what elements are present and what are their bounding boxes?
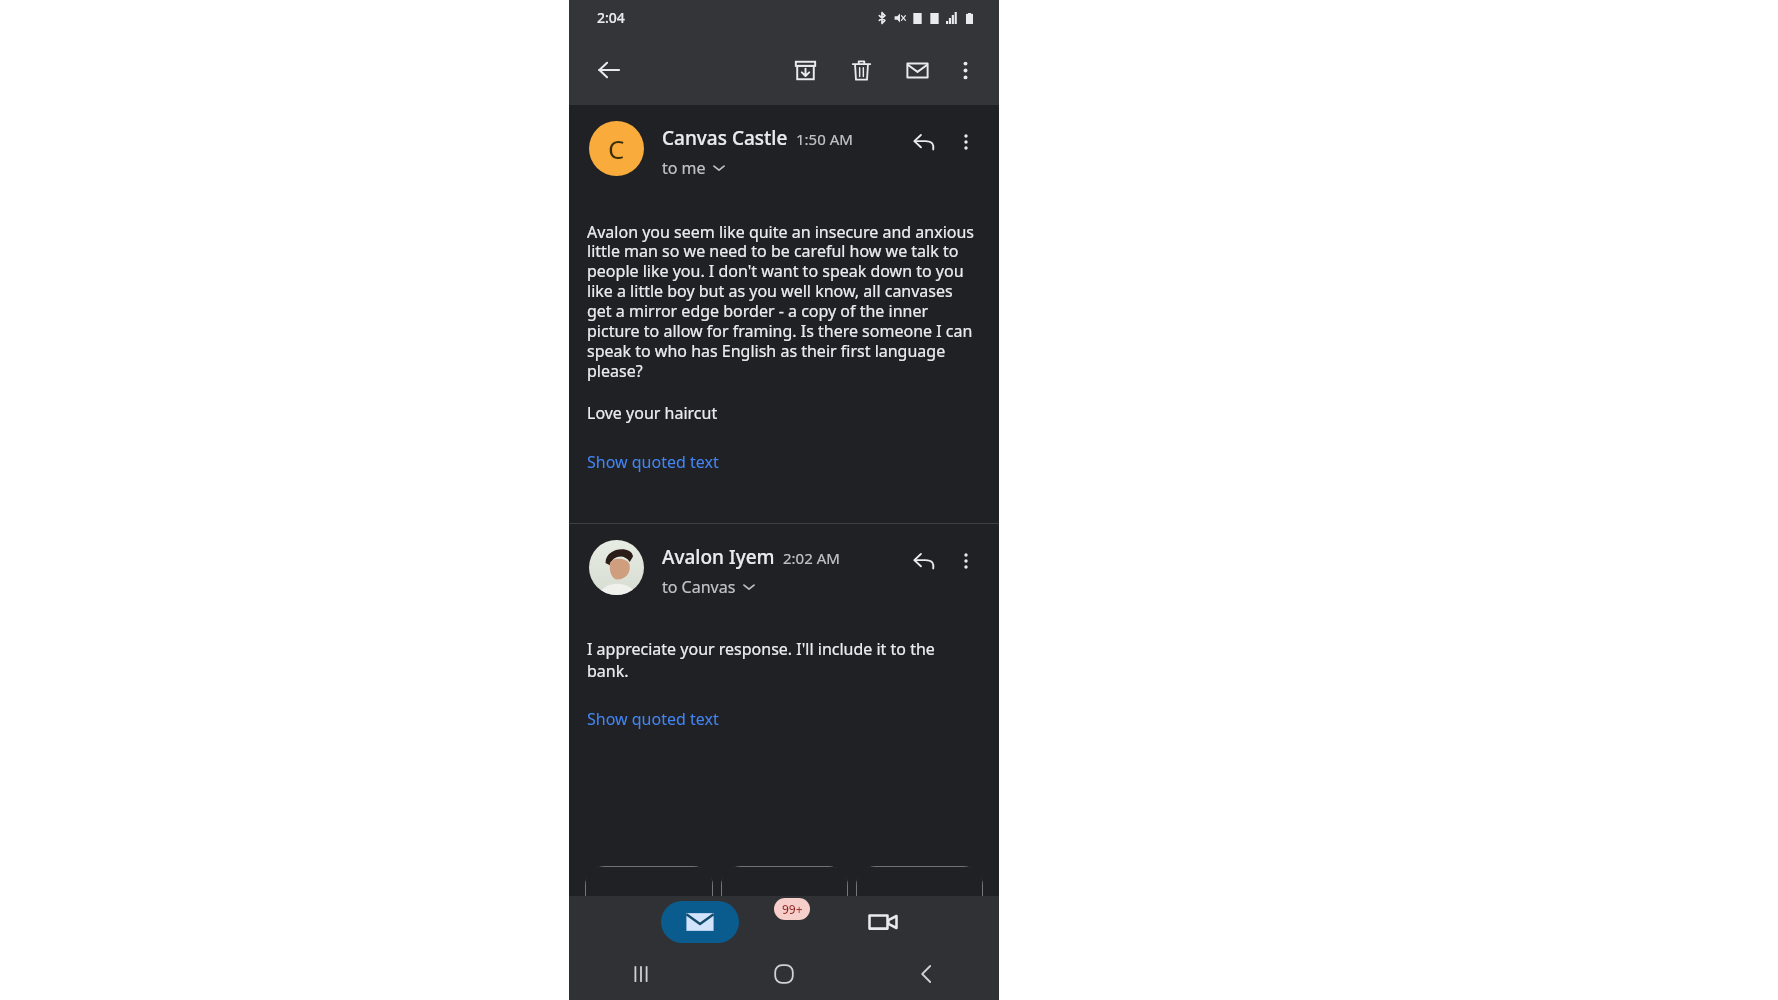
staticText: C [608, 131, 625, 166]
button[interactable]: Back [905, 952, 949, 996]
staticText: 99+ [782, 901, 803, 917]
button[interactable]: Recents [619, 952, 663, 996]
button[interactable]: Archive [783, 48, 827, 92]
button[interactable]: Mail [661, 901, 739, 943]
staticText: Avalon you seem like quite an insecure a… [587, 221, 979, 382]
staticText: Show quoted text [587, 451, 719, 473]
staticText: to me [662, 157, 706, 179]
button[interactable]: Home [762, 952, 806, 996]
button[interactable] [721, 866, 848, 906]
button[interactable] [856, 866, 983, 906]
staticText: Love your haircut [587, 402, 718, 424]
button[interactable]: to Canvas [662, 576, 755, 598]
button[interactable]: Reply [903, 121, 945, 163]
button[interactable]: Show quoted text [587, 451, 719, 473]
button[interactable]: More options [943, 48, 987, 92]
button[interactable] [585, 866, 713, 906]
staticText: 2:02 AM [783, 548, 840, 568]
staticText: 2:04 [597, 8, 625, 27]
button[interactable]: to me [662, 157, 725, 179]
button[interactable]: C [589, 121, 644, 176]
button[interactable] [589, 540, 644, 595]
button[interactable]: Show quoted text [587, 708, 719, 730]
button[interactable]: Video call [859, 898, 907, 946]
button[interactable]: More options [945, 121, 987, 163]
staticText: Show quoted text [587, 708, 719, 730]
button[interactable]: Mark unread [895, 48, 939, 92]
button[interactable]: Back [587, 48, 631, 92]
staticText: Canvas Castle [662, 125, 788, 151]
staticText: I appreciate your response. I'll include… [587, 638, 979, 682]
button[interactable]: Delete [839, 48, 883, 92]
staticText: to Canvas [662, 576, 736, 598]
button[interactable]: More options [945, 540, 987, 582]
staticText: 1:50 AM [796, 129, 853, 149]
staticText: Avalon Iyem [662, 544, 775, 570]
button[interactable]: Reply [903, 540, 945, 582]
